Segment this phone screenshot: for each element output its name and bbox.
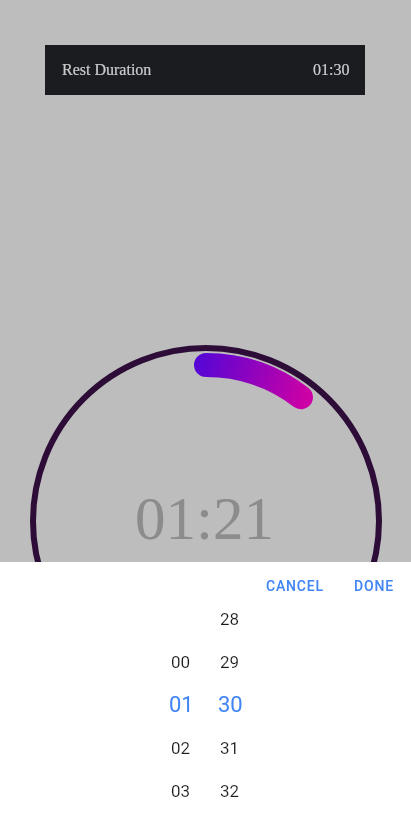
button[interactable]: 31: [202, 727, 258, 769]
button[interactable]: 28: [202, 598, 258, 640]
staticText: 32: [220, 781, 240, 801]
button[interactable]: DONE: [342, 568, 406, 604]
staticText: 03: [171, 781, 191, 801]
staticText: 00: [171, 652, 191, 672]
staticText: 01:30: [313, 61, 350, 79]
button[interactable]: 02: [153, 727, 209, 769]
staticText: 29: [220, 652, 240, 672]
staticText: 28: [220, 609, 240, 629]
button[interactable]: 32: [202, 770, 258, 812]
staticText: CANCEL: [266, 578, 324, 594]
button[interactable]: 29: [202, 641, 258, 683]
staticText: 01: [169, 692, 194, 718]
staticText: 30: [218, 692, 243, 718]
staticText: 02: [171, 738, 191, 758]
staticText: 31: [220, 738, 240, 758]
button[interactable]: 30: [202, 684, 258, 726]
staticText: Rest Duration: [62, 61, 152, 79]
button[interactable]: CANCEL: [250, 568, 340, 604]
staticText: DONE: [354, 578, 394, 594]
button[interactable]: 03: [153, 770, 209, 812]
button[interactable]: 01: [153, 684, 209, 726]
button[interactable]: 00: [153, 641, 209, 683]
staticText: 01:21: [135, 485, 274, 553]
